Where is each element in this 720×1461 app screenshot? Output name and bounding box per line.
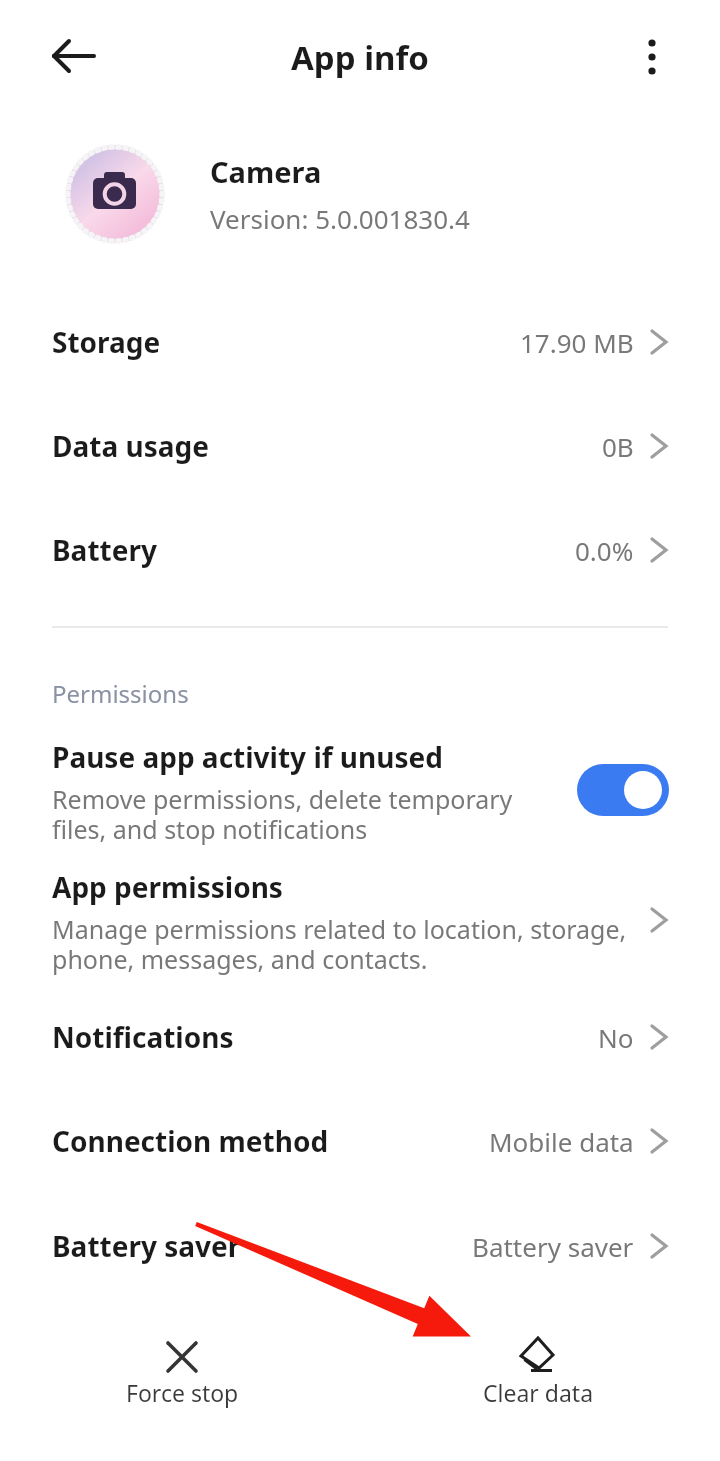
staticText: App info	[291, 35, 429, 80]
staticText: Battery saver	[472, 1229, 634, 1264]
button[interactable]	[0, 992, 720, 1082]
staticText: Storage	[52, 323, 161, 361]
button[interactable]	[577, 764, 669, 816]
staticText: Data usage	[52, 427, 209, 465]
staticText: 0.0%	[575, 533, 634, 568]
button[interactable]	[120, 1330, 245, 1410]
staticText: Version: 5.0.001830.4	[210, 201, 470, 236]
staticText: Permissions	[52, 677, 189, 710]
button[interactable]	[0, 858, 720, 982]
staticText: Pause app activity if unused	[52, 738, 443, 776]
staticText: No	[598, 1020, 634, 1055]
staticText: files, and stop notifications	[52, 812, 368, 846]
button[interactable]	[0, 726, 720, 846]
button[interactable]	[0, 401, 720, 491]
staticText: phone, messages, and contacts.	[52, 942, 428, 976]
button[interactable]	[0, 297, 720, 387]
button[interactable]	[46, 36, 98, 78]
staticText: Mobile data	[489, 1124, 634, 1159]
button[interactable]	[0, 1201, 720, 1291]
staticText: Connection method	[52, 1122, 329, 1160]
button[interactable]	[475, 1330, 600, 1410]
staticText: Battery saver	[52, 1227, 241, 1265]
staticText: Force stop	[126, 1377, 239, 1408]
staticText: Remove permissions, delete temporary	[52, 782, 513, 816]
staticText: 0B	[602, 429, 634, 464]
staticText: App permissions	[52, 868, 283, 906]
button[interactable]	[0, 1096, 720, 1186]
staticText: 17.90 MB	[520, 325, 634, 360]
staticText: Battery	[52, 531, 157, 569]
staticText: Clear data	[483, 1377, 594, 1408]
staticText: Camera	[210, 152, 322, 191]
staticText: Notifications	[52, 1018, 234, 1056]
staticText: Manage permissions related to location, …	[52, 912, 627, 946]
button[interactable]	[638, 30, 666, 84]
button[interactable]	[0, 505, 720, 595]
